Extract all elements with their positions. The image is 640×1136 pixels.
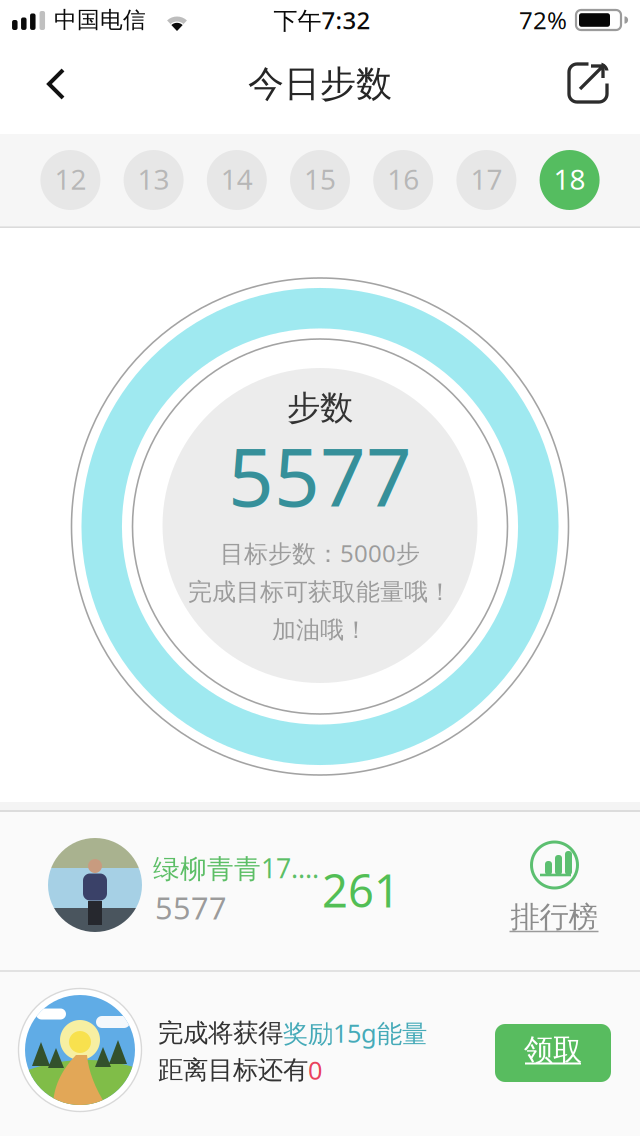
staticText: 下午7:32 bbox=[273, 4, 370, 36]
staticText: 中国电信 bbox=[54, 6, 146, 34]
button[interactable]: Back bbox=[0, 48, 112, 124]
staticText: 13 bbox=[138, 160, 170, 198]
staticText: 今日步数 bbox=[248, 62, 392, 106]
staticText: 完成目标可获取能量哦！ bbox=[188, 577, 452, 607]
staticText: 5577 bbox=[228, 422, 412, 529]
button[interactable]: 12 bbox=[40, 150, 100, 210]
button[interactable]: 排行榜 bbox=[492, 812, 617, 970]
staticText: 0 bbox=[308, 1053, 322, 1087]
staticText: 15 bbox=[304, 160, 336, 198]
button[interactable]: 13 bbox=[124, 150, 184, 210]
staticText: 目标步数：5000步 bbox=[220, 537, 420, 569]
staticText: 领取 bbox=[524, 1032, 582, 1068]
staticText: 排行榜 bbox=[510, 899, 597, 935]
button[interactable]: 18 bbox=[540, 150, 600, 210]
staticText: 72% bbox=[519, 4, 567, 36]
staticText: 步数 bbox=[287, 387, 353, 428]
staticText: 12 bbox=[54, 160, 86, 198]
button[interactable]: 16 bbox=[373, 150, 433, 210]
button[interactable]: 17 bbox=[456, 150, 516, 210]
staticText: 14 bbox=[221, 160, 253, 198]
staticText: 距离目标还有 bbox=[158, 1054, 308, 1085]
staticText: 加油哦！ bbox=[272, 615, 368, 645]
staticText: 18 bbox=[554, 160, 586, 198]
staticText: 17 bbox=[470, 160, 502, 198]
button[interactable]: Share bbox=[541, 40, 635, 126]
staticText: 5577 bbox=[155, 887, 227, 928]
staticText: 完成将获得 bbox=[158, 1017, 283, 1048]
staticText: 261 bbox=[322, 860, 400, 920]
button[interactable]: 领取 bbox=[495, 1024, 611, 1082]
staticText: 绿柳青青17.... bbox=[153, 850, 319, 886]
button[interactable]: 14 bbox=[207, 150, 267, 210]
staticText: 奖励15g能量 bbox=[283, 1016, 427, 1050]
staticText: 16 bbox=[387, 160, 419, 198]
button[interactable]: 15 bbox=[290, 150, 350, 210]
